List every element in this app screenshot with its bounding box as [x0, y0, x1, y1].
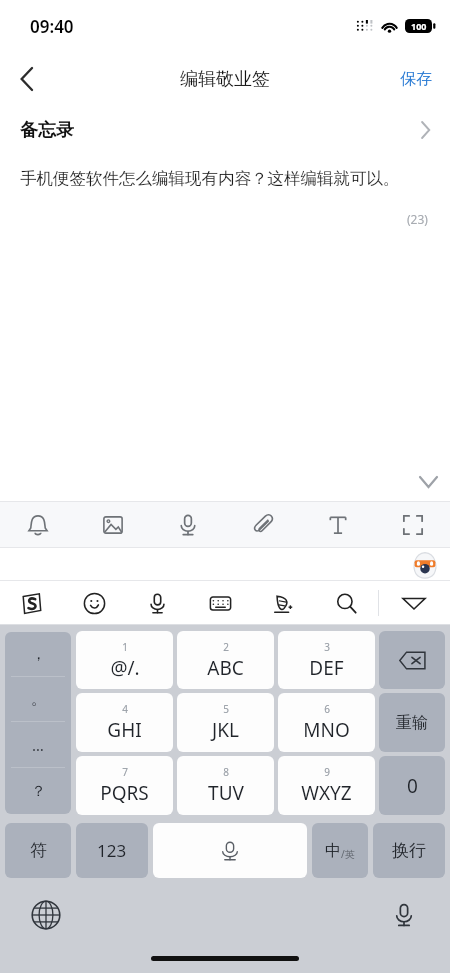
button[interactable]: ？	[5, 768, 71, 814]
staticText: /英	[341, 847, 355, 861]
button[interactable]: 换行	[373, 823, 445, 878]
button[interactable]: Hide keyboard	[378, 581, 450, 625]
button[interactable]: Emoji	[63, 581, 126, 625]
button[interactable]: Collapse	[406, 463, 450, 501]
staticText: 4	[122, 702, 128, 716]
button[interactable]: Sogou	[0, 581, 63, 625]
staticText: 7	[122, 765, 128, 779]
button[interactable]: 重输	[379, 693, 445, 752]
staticText: ABC	[207, 655, 244, 681]
staticText: JKL	[212, 717, 239, 743]
button[interactable]: Voice input	[386, 897, 422, 933]
button[interactable]: Attachment	[225, 502, 300, 547]
button[interactable]: 符	[5, 823, 71, 878]
staticText: WXYZ	[301, 780, 352, 806]
staticText: GHI	[107, 717, 142, 743]
staticText: 符	[30, 840, 47, 861]
staticText: 保存	[400, 69, 432, 89]
button[interactable]: Reminder	[0, 502, 75, 547]
button[interactable]: 9	[278, 756, 375, 815]
staticText: PQRS	[100, 780, 149, 806]
staticText: 重输	[396, 713, 428, 733]
button[interactable]: 0	[379, 756, 445, 815]
button[interactable]: 。	[5, 677, 71, 722]
staticText: …	[32, 735, 44, 755]
button[interactable]: Text style	[300, 502, 375, 547]
button[interactable]: Keyboard	[189, 581, 252, 625]
staticText: 手机便签软件怎么编辑现有内容？这样编辑就可以。	[20, 168, 400, 189]
button[interactable]: 备忘录	[0, 106, 450, 154]
staticText: 3	[324, 640, 330, 654]
staticText: 9	[324, 765, 330, 779]
staticText: 100	[411, 20, 427, 32]
button[interactable]: 3	[278, 631, 375, 689]
staticText: 编辑敬业签	[180, 68, 270, 91]
staticText: 2	[223, 640, 229, 654]
staticText: 09:40	[30, 15, 74, 38]
button[interactable]: …	[5, 722, 71, 768]
staticText: DEF	[309, 655, 344, 681]
staticText: 1	[122, 640, 128, 654]
button[interactable]: 6	[278, 693, 375, 752]
button[interactable]: 保存	[382, 52, 450, 106]
staticText: 5	[223, 702, 229, 716]
button[interactable]: Fullscreen	[375, 502, 450, 547]
button[interactable]: Back	[0, 52, 54, 106]
button[interactable]: 7	[76, 756, 173, 815]
staticText: 。	[31, 690, 46, 709]
staticText: 备忘录	[20, 119, 74, 142]
button[interactable]: Assistant	[410, 550, 440, 580]
staticText: 0	[407, 773, 418, 799]
button[interactable]: Space	[153, 823, 307, 878]
button[interactable]: Handwriting	[252, 581, 315, 625]
staticText: 中	[325, 841, 341, 861]
staticText: MNO	[303, 717, 350, 743]
staticText: 123	[97, 839, 127, 862]
button[interactable]: Search	[315, 581, 378, 625]
staticText: (23)	[407, 211, 428, 227]
staticText: TUV	[208, 780, 244, 806]
button[interactable]: Backspace	[379, 631, 445, 689]
button[interactable]: Voice	[150, 502, 225, 547]
button[interactable]: Switch language	[28, 897, 64, 933]
button[interactable]: Voice input	[126, 581, 189, 625]
button[interactable]: 2	[177, 631, 274, 689]
button[interactable]: 1	[76, 631, 173, 689]
staticText: 8	[223, 765, 229, 779]
button[interactable]: ，	[5, 632, 71, 677]
button[interactable]: 5	[177, 693, 274, 752]
staticText: 换行	[392, 840, 426, 861]
staticText: @/.	[110, 655, 140, 681]
button[interactable]: 4	[76, 693, 173, 752]
button[interactable]: 123	[76, 823, 148, 878]
button[interactable]: 中	[312, 823, 368, 878]
button[interactable]: Image	[75, 502, 150, 547]
staticText: 6	[324, 702, 330, 716]
staticText: ，	[31, 645, 46, 664]
button[interactable]: 8	[177, 756, 274, 815]
staticText: ？	[31, 782, 46, 801]
